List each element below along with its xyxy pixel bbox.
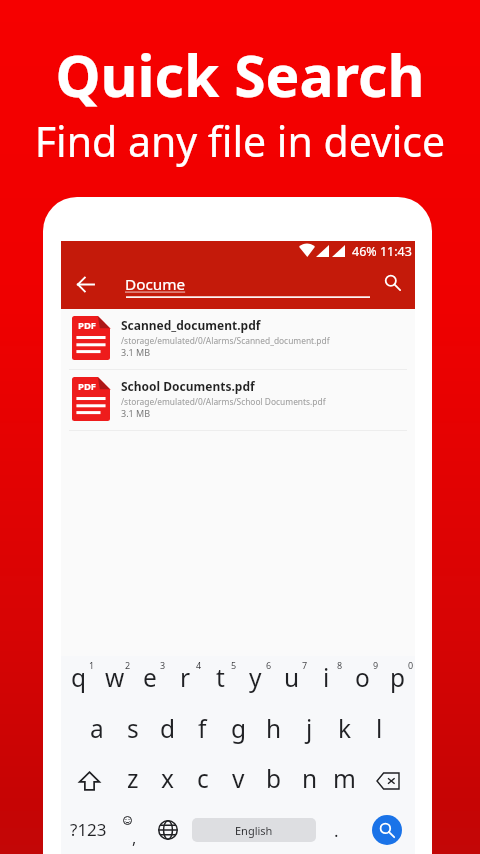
button[interactable]: ?123 <box>65 806 111 854</box>
staticText: Docume <box>125 274 186 295</box>
staticText: Find any file in device <box>0 113 480 169</box>
staticText: 0 <box>408 659 414 671</box>
staticText: e <box>143 661 157 694</box>
staticText: y <box>249 661 262 694</box>
button[interactable]: w <box>97 656 132 706</box>
staticText: , <box>132 827 137 849</box>
button[interactable]: m <box>327 756 362 806</box>
staticText: Scanned_document.pdf <box>121 317 261 333</box>
button[interactable]: Back <box>68 267 103 302</box>
button[interactable]: b <box>256 756 291 806</box>
button[interactable]: r <box>168 656 203 706</box>
staticText: . <box>334 819 339 842</box>
button[interactable]: Change language <box>151 806 185 854</box>
button[interactable]: z <box>115 756 150 806</box>
button[interactable]: e <box>132 656 167 706</box>
staticText: p <box>390 661 406 694</box>
staticText: j <box>306 712 313 745</box>
staticText: a <box>90 712 104 745</box>
staticText: School Documents.pdf <box>121 378 255 394</box>
staticText: ?123 <box>70 818 107 841</box>
staticText: PDF <box>78 319 97 332</box>
button[interactable]: l <box>362 706 397 756</box>
button[interactable]: Search <box>372 815 402 845</box>
staticText: English <box>235 823 273 838</box>
button[interactable]: k <box>327 706 362 756</box>
button[interactable]: Shift <box>67 756 111 806</box>
button[interactable]: PDF <box>61 309 415 369</box>
staticText: 3.1 MB <box>121 407 151 419</box>
staticText: 46% 11:43 <box>352 243 412 260</box>
button[interactable]: v <box>221 756 256 806</box>
staticText: /storage/emulated/0/Alarms/School Docume… <box>121 396 326 407</box>
staticText: w <box>105 661 125 694</box>
staticText: h <box>266 712 282 745</box>
staticText: x <box>161 762 174 795</box>
staticText: d <box>160 712 176 745</box>
staticText: l <box>376 712 383 745</box>
button[interactable]: j <box>292 706 327 756</box>
button[interactable]: i <box>309 656 344 706</box>
staticText: PDF <box>78 380 97 393</box>
button[interactable]: p <box>380 656 415 706</box>
button[interactable]: x <box>150 756 185 806</box>
staticText: z <box>127 762 139 795</box>
button[interactable]: d <box>150 706 185 756</box>
staticText: i <box>323 661 330 694</box>
staticText: c <box>197 762 209 795</box>
button[interactable]: Backspace <box>366 756 410 806</box>
staticText: 5 <box>231 659 237 671</box>
staticText: 6 <box>266 659 272 671</box>
button[interactable]: PDF <box>61 370 415 430</box>
staticText: Quick Search <box>0 36 480 114</box>
button[interactable]: o <box>345 656 380 706</box>
button[interactable]: . <box>319 806 353 854</box>
staticText: u <box>284 661 300 694</box>
button[interactable]: c <box>185 756 220 806</box>
staticText: /storage/emulated/0/Alarms/Scanned_docum… <box>121 335 330 346</box>
button[interactable]: n <box>292 756 327 806</box>
button[interactable]: s <box>115 706 150 756</box>
staticText: g <box>231 712 247 745</box>
button[interactable]: u <box>274 656 309 706</box>
staticText: b <box>266 762 282 795</box>
button[interactable]: f <box>185 706 220 756</box>
staticText: 4 <box>196 659 202 671</box>
staticText: 1 <box>89 659 95 671</box>
staticText: r <box>180 661 191 694</box>
staticText: n <box>302 762 318 795</box>
staticText: 2 <box>125 659 131 671</box>
staticText: 9 <box>373 659 379 671</box>
button[interactable]: q <box>61 656 96 706</box>
staticText: t <box>216 661 225 694</box>
staticText: s <box>127 712 139 745</box>
button[interactable]: English <box>192 818 316 842</box>
button[interactable]: h <box>256 706 291 756</box>
button[interactable]: Search <box>375 265 410 300</box>
staticText: 7 <box>302 659 308 671</box>
staticText: k <box>338 712 352 745</box>
staticText: 3.1 MB <box>121 346 151 358</box>
button[interactable]: a <box>79 706 114 756</box>
staticText: o <box>355 661 370 694</box>
staticText: 3 <box>160 659 166 671</box>
button[interactable]: g <box>221 706 256 756</box>
staticText: v <box>232 762 245 795</box>
staticText: f <box>198 712 207 745</box>
staticText: q <box>71 661 87 694</box>
button[interactable]: t <box>203 656 238 706</box>
staticText: m <box>333 762 356 795</box>
button[interactable]: Emoji <box>116 806 150 854</box>
button[interactable]: y <box>238 656 273 706</box>
staticText: 8 <box>337 659 343 671</box>
